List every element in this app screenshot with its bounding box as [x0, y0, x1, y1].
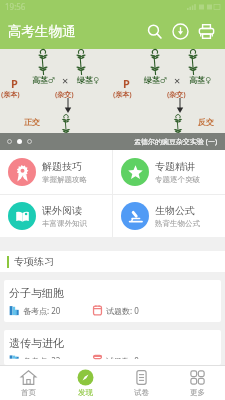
button[interactable]: 孟德尔的豌豆杂交实验 (一) — [0, 133, 225, 150]
staticText: 课外阅读 — [42, 204, 82, 217]
button[interactable]: Print — [193, 13, 219, 49]
staticText: 专项练习 — [14, 255, 54, 268]
button[interactable]: 更多 — [169, 366, 225, 400]
button[interactable]: 首页 — [0, 366, 57, 400]
staticText: 绿茎♂ — [144, 75, 168, 85]
staticText: 专题逐个突破 — [155, 175, 200, 184]
staticText: 熟背生物公式 — [155, 219, 200, 228]
staticText: 反交 — [198, 117, 214, 127]
button[interactable]: 发现 — [57, 366, 113, 400]
staticText: (杂交) — [55, 90, 74, 100]
staticText: 高考生物通 — [8, 23, 76, 40]
staticText: 正交 — [24, 117, 40, 127]
staticText: 更多 — [190, 388, 205, 397]
staticText: 19:56 — [5, 1, 26, 12]
button[interactable]: 生物公式 — [113, 195, 225, 237]
staticText: (亲本) — [1, 90, 20, 100]
staticText: 高茎♀ — [189, 75, 211, 85]
staticText: × — [62, 73, 69, 88]
staticText: 高茎♂ — [32, 75, 56, 85]
staticText: 备考点: 22 — [23, 355, 61, 359]
button[interactable]: 课外阅读 — [0, 195, 112, 237]
button[interactable]: 分子与细胞 — [4, 280, 221, 322]
staticText: 孟德尔的豌豆杂交实验 (一) — [134, 137, 218, 147]
staticText: 试卷 — [134, 388, 149, 397]
staticText: P — [123, 76, 130, 91]
button[interactable]: 遗传与进化 — [4, 330, 221, 365]
staticText: 分子与细胞 — [9, 286, 64, 300]
staticText: 丰富课外知识 — [42, 219, 87, 228]
staticText: 发现 — [78, 388, 93, 397]
staticText: 专题精讲 — [155, 160, 195, 173]
staticText: × — [174, 73, 181, 88]
staticText: 试题数: 0 — [106, 305, 139, 316]
staticText: 绿茎♀ — [77, 75, 99, 85]
staticText: 备考点: 20 — [23, 305, 61, 316]
staticText: 试题数: 0 — [106, 355, 139, 359]
staticText: 首页 — [21, 388, 36, 397]
button[interactable]: 试卷 — [113, 366, 169, 400]
staticText: 解题技巧 — [42, 160, 82, 173]
staticText: P — [11, 76, 18, 91]
button[interactable]: 专题精讲 — [113, 150, 225, 194]
button[interactable]: Download — [167, 13, 193, 49]
staticText: 遗传与进化 — [9, 336, 64, 350]
button[interactable]: 解题技巧 — [0, 150, 112, 194]
button[interactable]: Search — [141, 13, 167, 49]
staticText: 生物公式 — [155, 204, 195, 217]
staticText: 掌握解题攻略 — [42, 175, 87, 184]
staticText: (杂交) — [167, 90, 186, 100]
staticText: (亲本) — [113, 90, 132, 100]
